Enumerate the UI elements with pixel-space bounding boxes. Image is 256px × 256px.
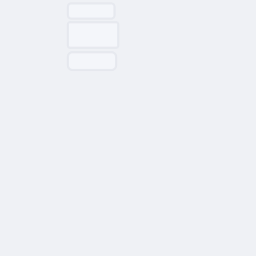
button[interactable]: Item 3 (68, 52, 116, 70)
button[interactable]: Item 1 (68, 3, 114, 19)
button[interactable]: Item 2 (68, 22, 118, 48)
